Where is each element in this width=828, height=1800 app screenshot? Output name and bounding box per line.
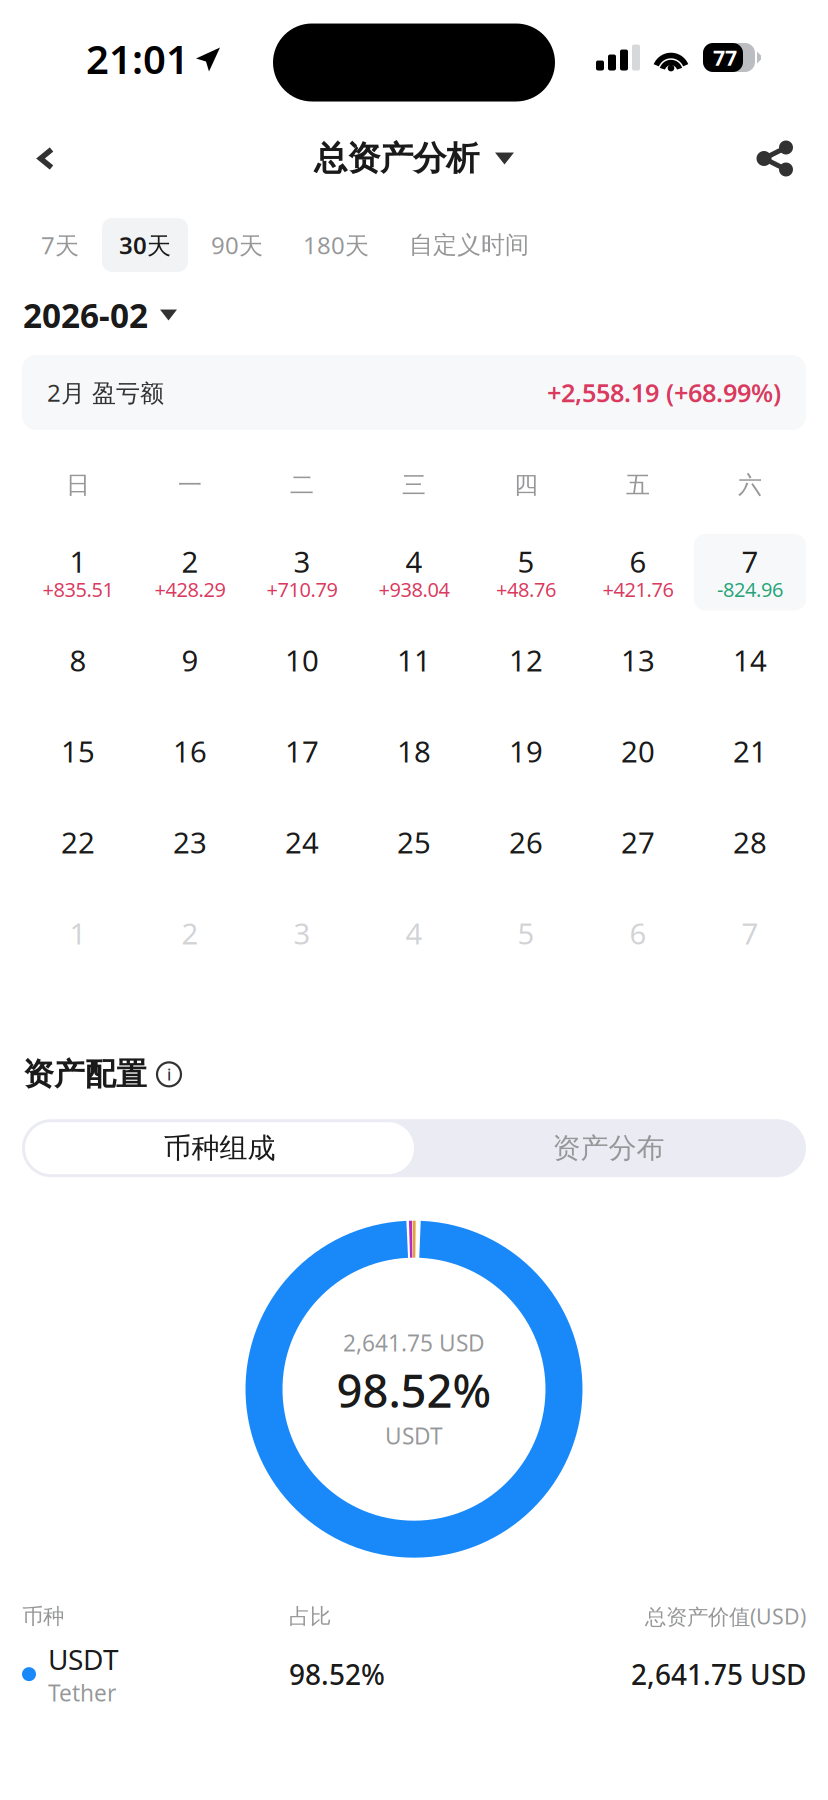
staticText: 六 [738,470,762,500]
staticText: 77 [713,43,737,72]
staticText: 五 [626,470,650,500]
staticText: +421.76 [602,576,673,603]
button[interactable]: 19 [470,719,582,782]
button[interactable]: 4 [358,534,470,610]
button[interactable]: 资产分布 [414,1122,803,1174]
button[interactable]: 7天 [24,218,96,272]
button[interactable]: 4 [358,901,470,964]
staticText: +2,558.19 (+68.99%) [547,376,781,409]
staticText: 7天 [41,229,79,261]
button[interactable]: 20 [582,719,694,782]
button[interactable]: 21 [694,719,806,782]
staticText: 28 [733,822,767,861]
staticText: -824.96 [717,576,783,603]
staticText: 总资产分析 [314,138,479,179]
staticText: +48.76 [496,576,556,603]
staticText: USDT [48,1640,119,1678]
button[interactable]: 27 [582,810,694,873]
button[interactable]: 28 [694,810,806,873]
staticText: 5 [517,542,534,581]
button[interactable]: 总资产分析 [304,128,524,189]
button[interactable]: 3 [246,534,358,610]
button[interactable]: 25 [358,810,470,873]
staticText: 一 [178,470,202,500]
staticText: 19 [509,731,543,770]
staticText: 14 [733,640,767,679]
button[interactable]: 5 [470,534,582,610]
staticText: 21:01 [86,32,189,85]
staticText: 总资产价值(USD) [645,1602,806,1630]
button[interactable]: 币种组成 [25,1122,414,1174]
button[interactable]: 90天 [194,218,280,272]
button[interactable]: 16 [134,719,246,782]
staticText: 21 [733,731,767,770]
button[interactable]: 自定义时间 [392,219,546,271]
button[interactable]: 22 [22,810,134,873]
staticText: 6 [629,542,646,581]
button[interactable]: 18 [358,719,470,782]
staticText: 2,641.75 USD [343,1328,485,1358]
staticText: 180天 [303,229,369,261]
staticText: +428.29 [154,576,225,603]
button[interactable]: 17 [246,719,358,782]
button[interactable]: 13 [582,628,694,691]
staticText: 5 [517,913,534,952]
button[interactable]: 2 [134,901,246,964]
button[interactable]: 2 [134,534,246,610]
staticText: 22 [61,822,95,861]
button[interactable]: 6 [582,901,694,964]
staticText: 1 [69,913,86,952]
staticText: 90天 [211,229,263,261]
button[interactable]: 2026-02 [23,285,177,345]
button[interactable]: 11 [358,628,470,691]
staticText: 98.52% [289,1656,385,1693]
button[interactable]: Back [8,118,84,198]
button[interactable]: Share [744,118,820,198]
staticText: 币种 [22,1603,64,1629]
staticText: 资产配置 [23,1055,147,1093]
button[interactable]: 1 [22,901,134,964]
staticText: 7 [741,913,758,952]
button[interactable]: 5 [470,901,582,964]
button[interactable]: 14 [694,628,806,691]
staticText: 9 [181,640,198,679]
button[interactable]: 15 [22,719,134,782]
staticText: 资产分布 [552,1131,664,1165]
button[interactable]: 12 [470,628,582,691]
staticText: 17 [285,731,319,770]
staticText: 26 [509,822,543,861]
button[interactable]: 23 [134,810,246,873]
button[interactable]: 26 [470,810,582,873]
staticText: 4 [405,913,422,952]
button[interactable]: 10 [246,628,358,691]
staticText: 11 [397,640,431,679]
button[interactable]: 7 [694,534,806,610]
staticText: 四 [514,470,538,500]
staticText: i [167,1064,171,1085]
staticText: 1 [69,542,86,581]
staticText: 6 [629,913,646,952]
staticText: 2 [181,542,198,581]
staticText: 币种组成 [163,1131,275,1165]
staticText: +710.79 [266,576,337,603]
button[interactable]: 7 [694,901,806,964]
staticText: +938.04 [378,576,449,603]
staticText: USDT [385,1421,443,1451]
staticText: 8 [69,640,86,679]
staticText: 20 [621,731,655,770]
button[interactable]: 3 [246,901,358,964]
button[interactable]: 9 [134,628,246,691]
button[interactable]: 180天 [286,218,386,272]
staticText: 4 [405,542,422,581]
button[interactable]: 8 [22,628,134,691]
staticText: 占比 [289,1603,331,1629]
button[interactable]: 30天 [102,218,188,272]
staticText: 7 [741,542,758,581]
staticText: Tether [48,1678,116,1708]
button[interactable]: 6 [582,534,694,610]
button[interactable]: 24 [246,810,358,873]
staticText: 2月 盈亏额 [47,377,164,408]
button[interactable]: 1 [22,534,134,610]
staticText: 自定义时间 [409,230,529,260]
staticText: 23 [173,822,207,861]
